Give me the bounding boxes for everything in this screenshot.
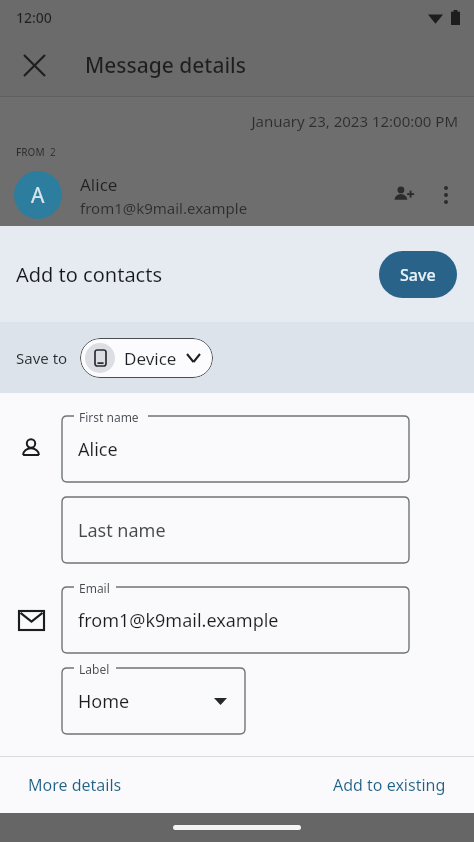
button[interactable]: More details bbox=[0, 757, 237, 813]
staticText: Last name bbox=[78, 518, 166, 543]
staticText: Add to existing bbox=[333, 774, 446, 796]
staticText: Add to contacts bbox=[16, 261, 162, 288]
staticText: Save bbox=[400, 264, 436, 286]
staticText: from1@k9mail.example bbox=[78, 608, 279, 633]
button[interactable] bbox=[0, 757, 474, 813]
button[interactable]: Close bbox=[10, 41, 58, 89]
button[interactable]: Label bbox=[62, 668, 245, 734]
staticText: from1@k9mail.example bbox=[80, 198, 248, 218]
staticText: Email bbox=[79, 580, 110, 596]
staticText: 12:00 bbox=[16, 8, 52, 27]
staticText: A bbox=[31, 181, 45, 210]
button[interactable]: More options bbox=[426, 175, 466, 215]
button[interactable]: Device bbox=[80, 338, 213, 378]
staticText: Label bbox=[79, 661, 110, 677]
button[interactable]: Add contact bbox=[382, 173, 426, 217]
staticText: Save to bbox=[16, 348, 68, 368]
staticText: More details bbox=[28, 774, 122, 796]
staticText: Alice bbox=[80, 173, 118, 196]
button[interactable]: Last name bbox=[62, 497, 409, 563]
staticText: Alice bbox=[78, 437, 118, 462]
staticText: First name bbox=[79, 409, 139, 425]
staticText: Message details bbox=[85, 51, 246, 80]
button[interactable]: Email bbox=[62, 587, 409, 653]
staticText: FROM bbox=[16, 145, 45, 159]
staticText: Home bbox=[78, 689, 130, 714]
staticText: Device bbox=[124, 347, 177, 370]
button[interactable]: Add to existing bbox=[237, 757, 474, 813]
button[interactable]: Save bbox=[379, 251, 457, 298]
button[interactable]: First name bbox=[62, 416, 409, 482]
staticText: January 23, 2023 12:00:00 PM bbox=[0, 111, 458, 131]
staticText: 2 bbox=[50, 145, 56, 159]
